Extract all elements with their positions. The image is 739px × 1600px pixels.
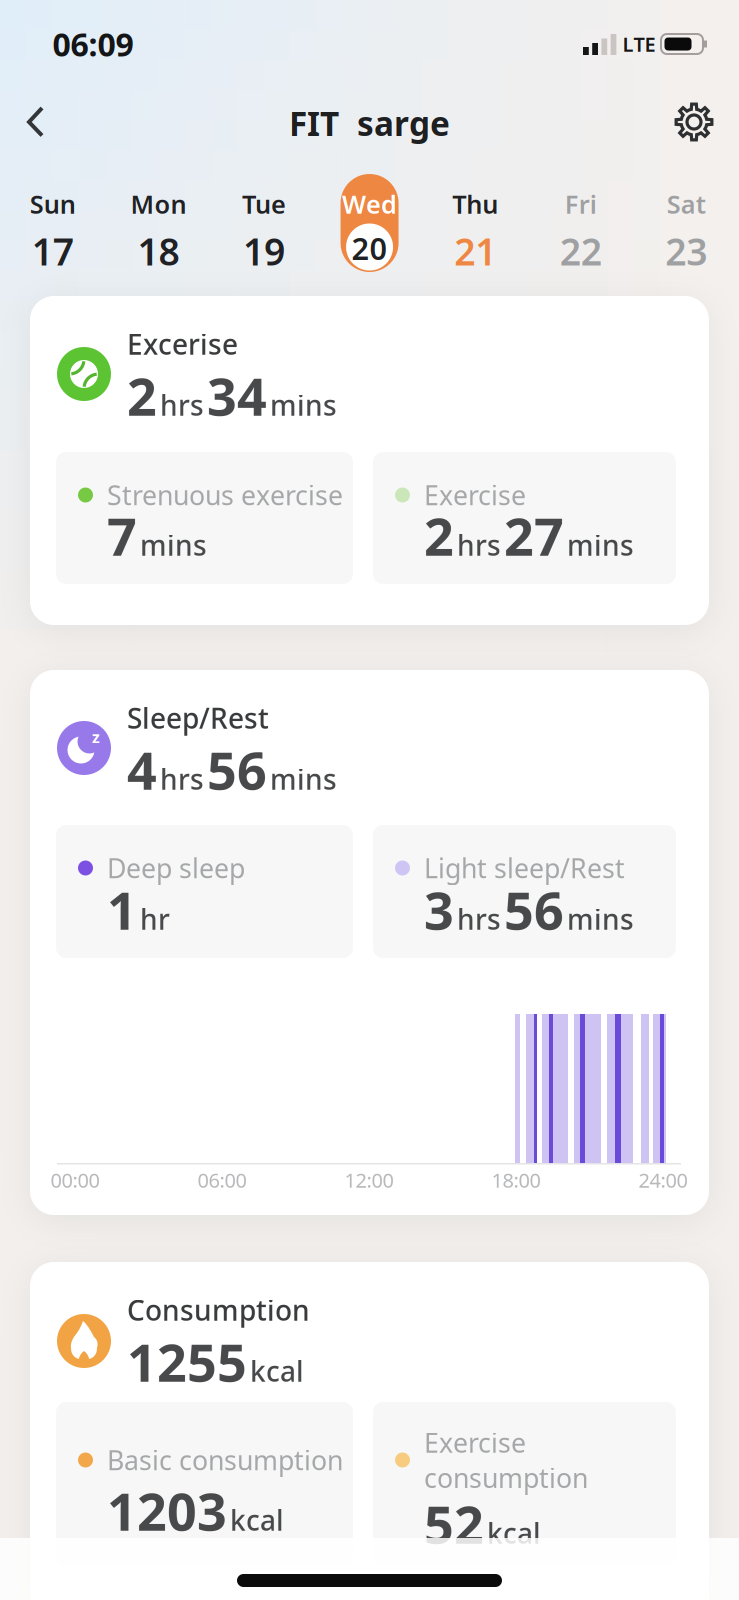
staticText: Mon bbox=[130, 187, 186, 221]
staticText: 1 hr bbox=[107, 875, 173, 944]
staticText: z bbox=[92, 726, 100, 748]
staticText: 19 bbox=[243, 226, 285, 276]
staticText: 23 bbox=[665, 226, 707, 276]
staticText: 12:00 bbox=[344, 1167, 393, 1193]
button[interactable]: Sat bbox=[633, 172, 739, 274]
staticText: Excerise bbox=[127, 325, 238, 363]
button[interactable]: Wed bbox=[317, 172, 422, 274]
staticText: Consumption bbox=[127, 1291, 310, 1329]
staticText: 7 mins bbox=[107, 501, 210, 570]
staticText: 4 hrs 56 mins bbox=[127, 735, 340, 804]
button[interactable]: z bbox=[30, 670, 709, 1215]
staticText: Wed bbox=[342, 187, 397, 221]
staticText: 1255 kcal bbox=[127, 1327, 307, 1396]
staticText: 24:00 bbox=[638, 1167, 687, 1193]
staticText: Exercise consumption bbox=[424, 1425, 588, 1495]
staticText: 2 hrs 34 mins bbox=[127, 361, 340, 430]
staticText: Strenuous exercise bbox=[107, 477, 343, 513]
staticText: 52 kcal bbox=[424, 1489, 544, 1558]
staticText: 06:00 bbox=[197, 1167, 246, 1193]
staticText: Fri bbox=[565, 187, 597, 221]
staticText: Sun bbox=[30, 187, 76, 221]
button[interactable]: Mon bbox=[106, 172, 211, 274]
button[interactable]: Back bbox=[12, 99, 58, 145]
staticText: 21 bbox=[454, 226, 496, 276]
staticText: 17 bbox=[32, 226, 74, 276]
staticText: LTE bbox=[622, 31, 655, 57]
staticText: Tue bbox=[242, 187, 286, 221]
button[interactable]: Tue bbox=[211, 172, 317, 274]
button[interactable]: Fri bbox=[528, 172, 633, 274]
staticText: Sat bbox=[667, 187, 706, 221]
staticText: 20 bbox=[352, 228, 388, 268]
button[interactable]: Sun bbox=[0, 172, 105, 274]
staticText: 06:09 bbox=[52, 23, 133, 65]
button[interactable]: Excerise bbox=[30, 296, 709, 625]
staticText: Light sleep/Rest bbox=[424, 850, 625, 886]
button[interactable]: Consumption bbox=[30, 1262, 709, 1600]
staticText: Thu bbox=[452, 187, 498, 221]
staticText: Sleep/Rest bbox=[127, 699, 269, 737]
staticText: 2 hrs 27 mins bbox=[424, 501, 637, 570]
staticText: FIT sarge bbox=[289, 101, 450, 145]
button[interactable]: Thu bbox=[422, 172, 528, 274]
staticText: Basic consumption bbox=[107, 1442, 343, 1478]
staticText: Exercise bbox=[424, 477, 526, 513]
staticText: 1203 kcal bbox=[107, 1476, 287, 1545]
staticText: 00:00 bbox=[50, 1167, 99, 1193]
staticText: Deep sleep bbox=[107, 850, 245, 886]
staticText: 18:00 bbox=[491, 1167, 540, 1193]
staticText: 22 bbox=[560, 226, 602, 276]
staticText: 3 hrs 56 mins bbox=[424, 875, 637, 944]
button[interactable]: Settings bbox=[671, 99, 717, 145]
staticText: 18 bbox=[137, 226, 179, 276]
